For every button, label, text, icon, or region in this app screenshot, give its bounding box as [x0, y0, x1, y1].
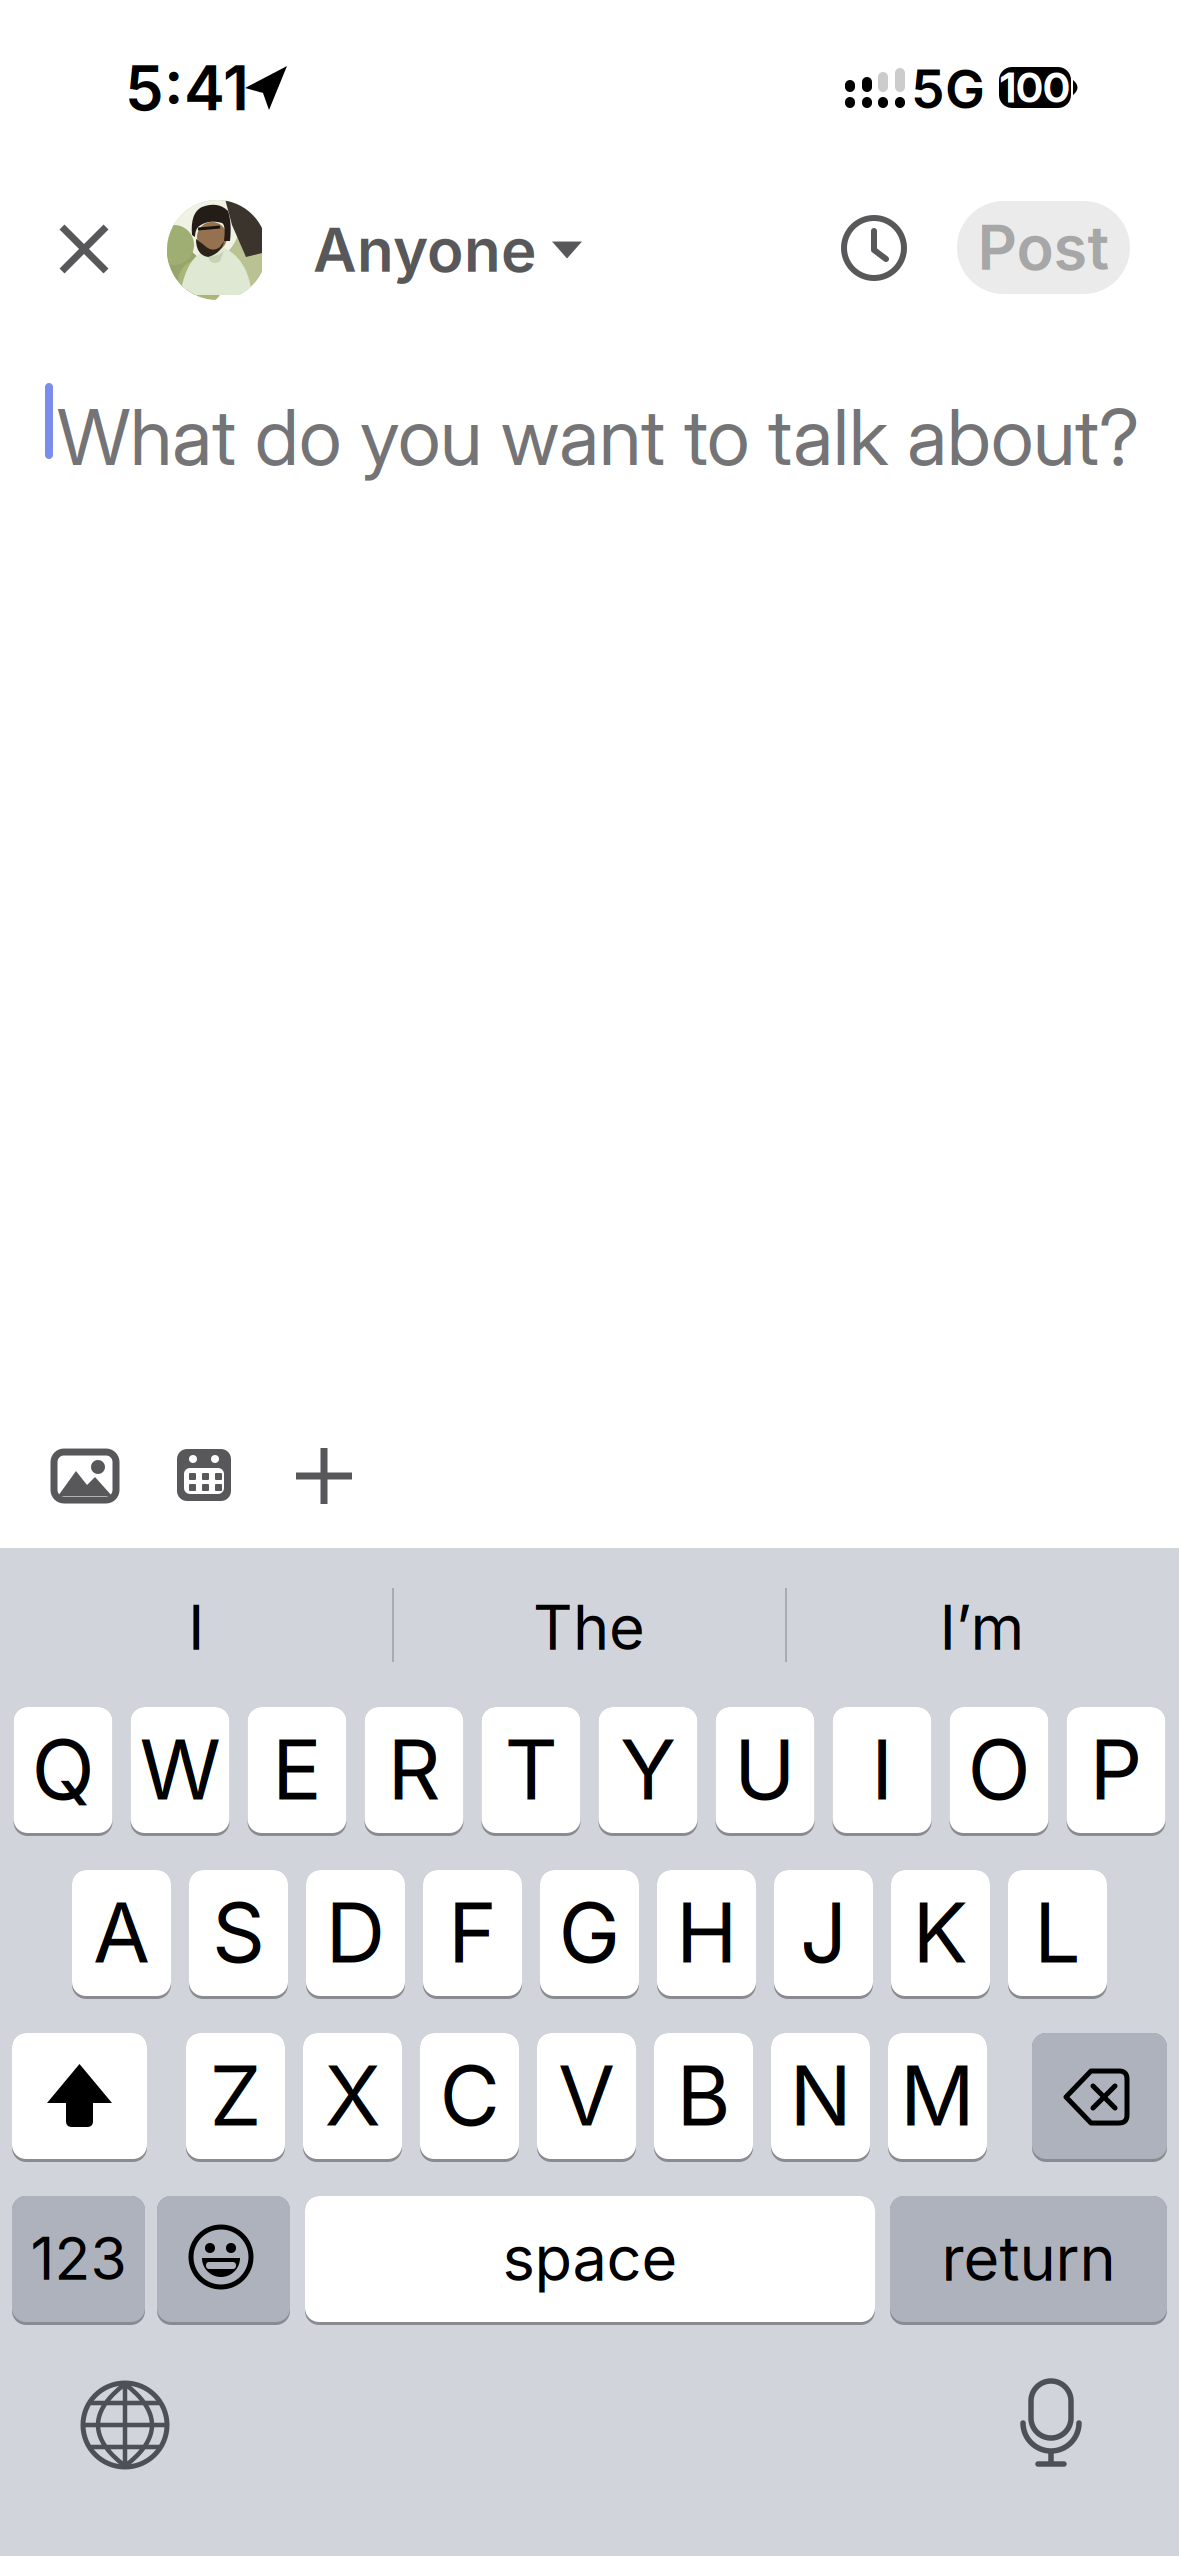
staticText: 100 [1000, 63, 1070, 112]
button[interactable]: Y [598, 1707, 697, 1836]
button[interactable]: S [189, 1870, 288, 1999]
button[interactable]: Post [957, 201, 1130, 294]
staticText: What do you want to talk about? [57, 390, 1140, 484]
button[interactable]: C [420, 2033, 519, 2162]
staticText: The [533, 1591, 645, 1664]
button[interactable]: Dictate [1014, 2379, 1088, 2471]
button[interactable]: G [540, 1870, 639, 1999]
button[interactable]: N [771, 2033, 870, 2162]
button[interactable]: Schedule post [844, 218, 904, 278]
button[interactable]: Next keyboard [81, 2381, 169, 2469]
button[interactable]: A [72, 1870, 171, 1999]
button[interactable]: Dismiss [59, 224, 109, 274]
staticText: D [325, 1884, 385, 1981]
staticText: F [448, 1884, 497, 1981]
button[interactable]: Emoji [157, 2196, 290, 2325]
button[interactable]: K [891, 1870, 990, 1999]
staticText: J [800, 1884, 847, 1981]
staticText: Anyone [313, 215, 536, 285]
staticText: U [734, 1721, 796, 1818]
button[interactable]: space [305, 2196, 875, 2325]
staticText: 5G [911, 57, 985, 120]
staticText: A [93, 1884, 150, 1981]
staticText: X [324, 2047, 380, 2144]
button[interactable]: R [364, 1707, 463, 1836]
staticText: I [871, 1721, 893, 1818]
button[interactable]: Add photo [54, 1452, 116, 1500]
button[interactable]: Delete [1032, 2033, 1167, 2162]
button[interactable]: X [303, 2033, 402, 2162]
button[interactable]: Shift [12, 2033, 147, 2162]
staticText: O [967, 1721, 1030, 1818]
button[interactable]: I [832, 1707, 931, 1836]
staticText: P [1089, 1721, 1142, 1818]
button[interactable]: B [654, 2033, 753, 2162]
staticText: R [387, 1721, 440, 1818]
button[interactable]: U [715, 1707, 814, 1836]
staticText: N [789, 2047, 851, 2144]
button[interactable]: Q [13, 1707, 112, 1836]
button[interactable]: I [0, 1548, 392, 1707]
staticText: K [912, 1884, 968, 1981]
button[interactable]: P [1066, 1707, 1165, 1836]
staticText: W [139, 1721, 220, 1818]
button[interactable]: return [890, 2196, 1167, 2325]
staticText: 5:41 [125, 52, 249, 124]
staticText: E [272, 1721, 322, 1818]
staticText: C [439, 2047, 499, 2144]
staticText: return [941, 2222, 1115, 2295]
button[interactable]: L [1008, 1870, 1107, 1999]
button[interactable]: I’m [786, 1548, 1178, 1707]
button[interactable]: Anyone [167, 200, 582, 300]
button[interactable]: T [481, 1707, 580, 1836]
staticText: T [504, 1721, 557, 1818]
button[interactable]: O [949, 1707, 1048, 1836]
button[interactable]: Numbers [12, 2196, 145, 2325]
button[interactable]: F [423, 1870, 522, 1999]
staticText: S [212, 1884, 265, 1981]
button[interactable]: Schedule [177, 1449, 231, 1501]
staticText: B [676, 2047, 730, 2144]
staticText: Y [620, 1721, 676, 1818]
button[interactable]: More options [296, 1448, 352, 1504]
staticText: Q [31, 1721, 94, 1818]
staticText: V [558, 2047, 615, 2144]
button[interactable]: M [888, 2033, 987, 2162]
staticText: H [676, 1884, 737, 1981]
staticText: L [1034, 1884, 1081, 1981]
staticText: G [558, 1884, 620, 1981]
staticText: Post [977, 211, 1109, 284]
button[interactable]: E [247, 1707, 346, 1836]
staticText: space [502, 2222, 677, 2295]
button[interactable]: H [657, 1870, 756, 1999]
staticText: I [188, 1591, 204, 1664]
button[interactable]: D [306, 1870, 405, 1999]
staticText: Z [209, 2047, 261, 2144]
button[interactable]: W [130, 1707, 229, 1836]
button[interactable]: V [537, 2033, 636, 2162]
button[interactable]: J [774, 1870, 873, 1999]
staticText: I’m [939, 1591, 1024, 1664]
staticText: 123 [30, 2224, 126, 2293]
button[interactable]: Z [186, 2033, 285, 2162]
staticText: M [900, 2047, 975, 2144]
button[interactable]: The [393, 1548, 785, 1707]
